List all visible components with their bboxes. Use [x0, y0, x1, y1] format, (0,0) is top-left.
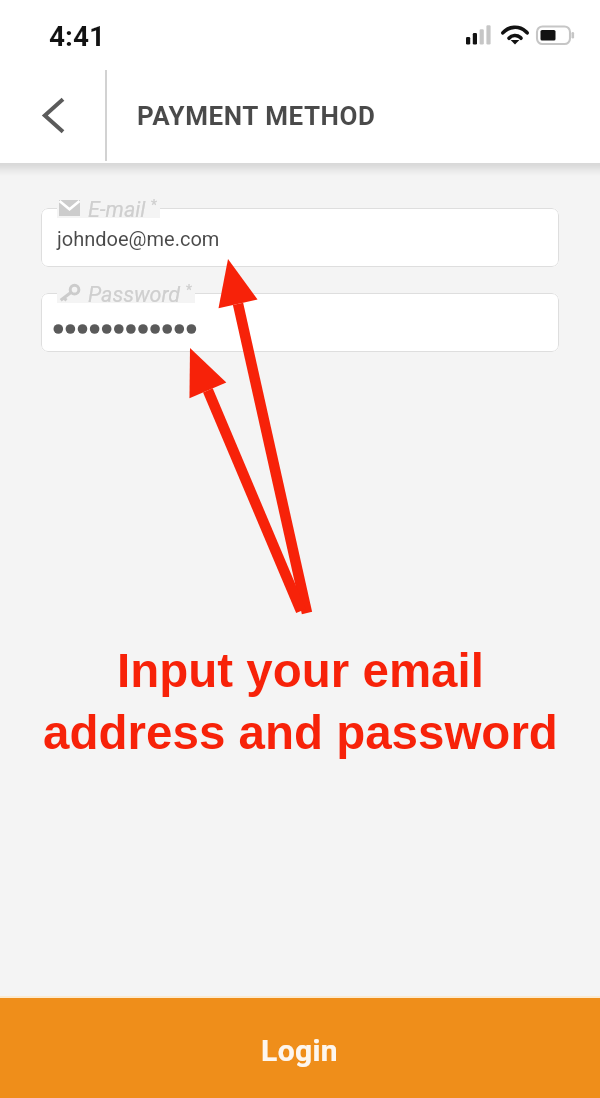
staticText: * [186, 282, 193, 298]
staticText: * [151, 197, 158, 213]
staticText: E-mail [88, 197, 146, 218]
staticText: PAYMENT METHOD [137, 101, 376, 131]
staticText: Input your email [117, 644, 484, 697]
button[interactable] [41, 293, 559, 352]
staticText: johndoe@me.com [57, 227, 220, 250]
button[interactable]: johndoe@me.com [41, 208, 559, 267]
staticText: 4:41 [49, 20, 106, 53]
staticText: address and password [43, 706, 558, 759]
button[interactable]: Login [0, 996, 600, 1098]
button[interactable]: Back [0, 68, 105, 163]
staticText: Password [88, 282, 181, 303]
staticText: Login [261, 1033, 339, 1068]
